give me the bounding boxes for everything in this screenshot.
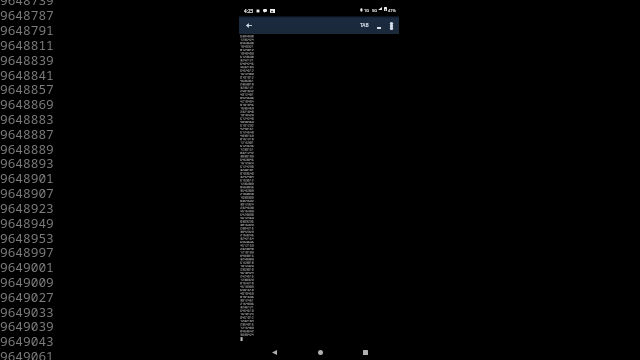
staticText: 9649009 (0, 273, 54, 290)
staticText: 9649027 (0, 288, 54, 305)
staticText: 9649039 (0, 317, 54, 334)
staticText: 9648907 (0, 184, 54, 201)
button[interactable]: More options (386, 16, 397, 33)
staticText: 9649043 (0, 332, 54, 349)
staticText: 9649061 (0, 347, 54, 360)
button[interactable]: TAB (357, 16, 371, 33)
button[interactable]: Hide keyboard (373, 16, 384, 33)
staticText: 9648869 (0, 95, 54, 112)
staticText: 4:23 (244, 8, 254, 14)
staticText: TAB (360, 22, 369, 29)
staticText: 41% (388, 8, 396, 13)
staticText: 9648739 (0, 0, 54, 8)
staticText: 9649033 (0, 303, 54, 320)
button[interactable]: Back (266, 344, 282, 360)
staticText: 9648953 (0, 229, 54, 246)
staticText: 9648923 (0, 199, 54, 216)
staticText: 9648857 (0, 80, 54, 97)
staticText: 9648791 (0, 21, 54, 38)
button[interactable]: Recent apps (357, 344, 373, 360)
staticText: 9648997 (0, 243, 54, 260)
staticText: 5G (372, 8, 378, 13)
staticText: 9648893 (0, 154, 54, 171)
staticText: 9648841 (0, 66, 54, 83)
staticText: 9648787 (0, 6, 54, 23)
staticText: 9648889 (0, 140, 54, 157)
staticText: 9648811 (0, 36, 54, 53)
staticText: 9648901 (0, 169, 54, 186)
staticText: 9648949 (0, 214, 54, 231)
staticText: 1G (364, 8, 369, 13)
staticText: 9648887 (0, 125, 54, 142)
button[interactable]: Home (312, 344, 328, 360)
staticText: 9648839 (0, 51, 54, 68)
staticText: 9648883 (0, 110, 54, 127)
button[interactable]: Navigate up (241, 17, 257, 33)
staticText: 9649001 (0, 258, 54, 275)
